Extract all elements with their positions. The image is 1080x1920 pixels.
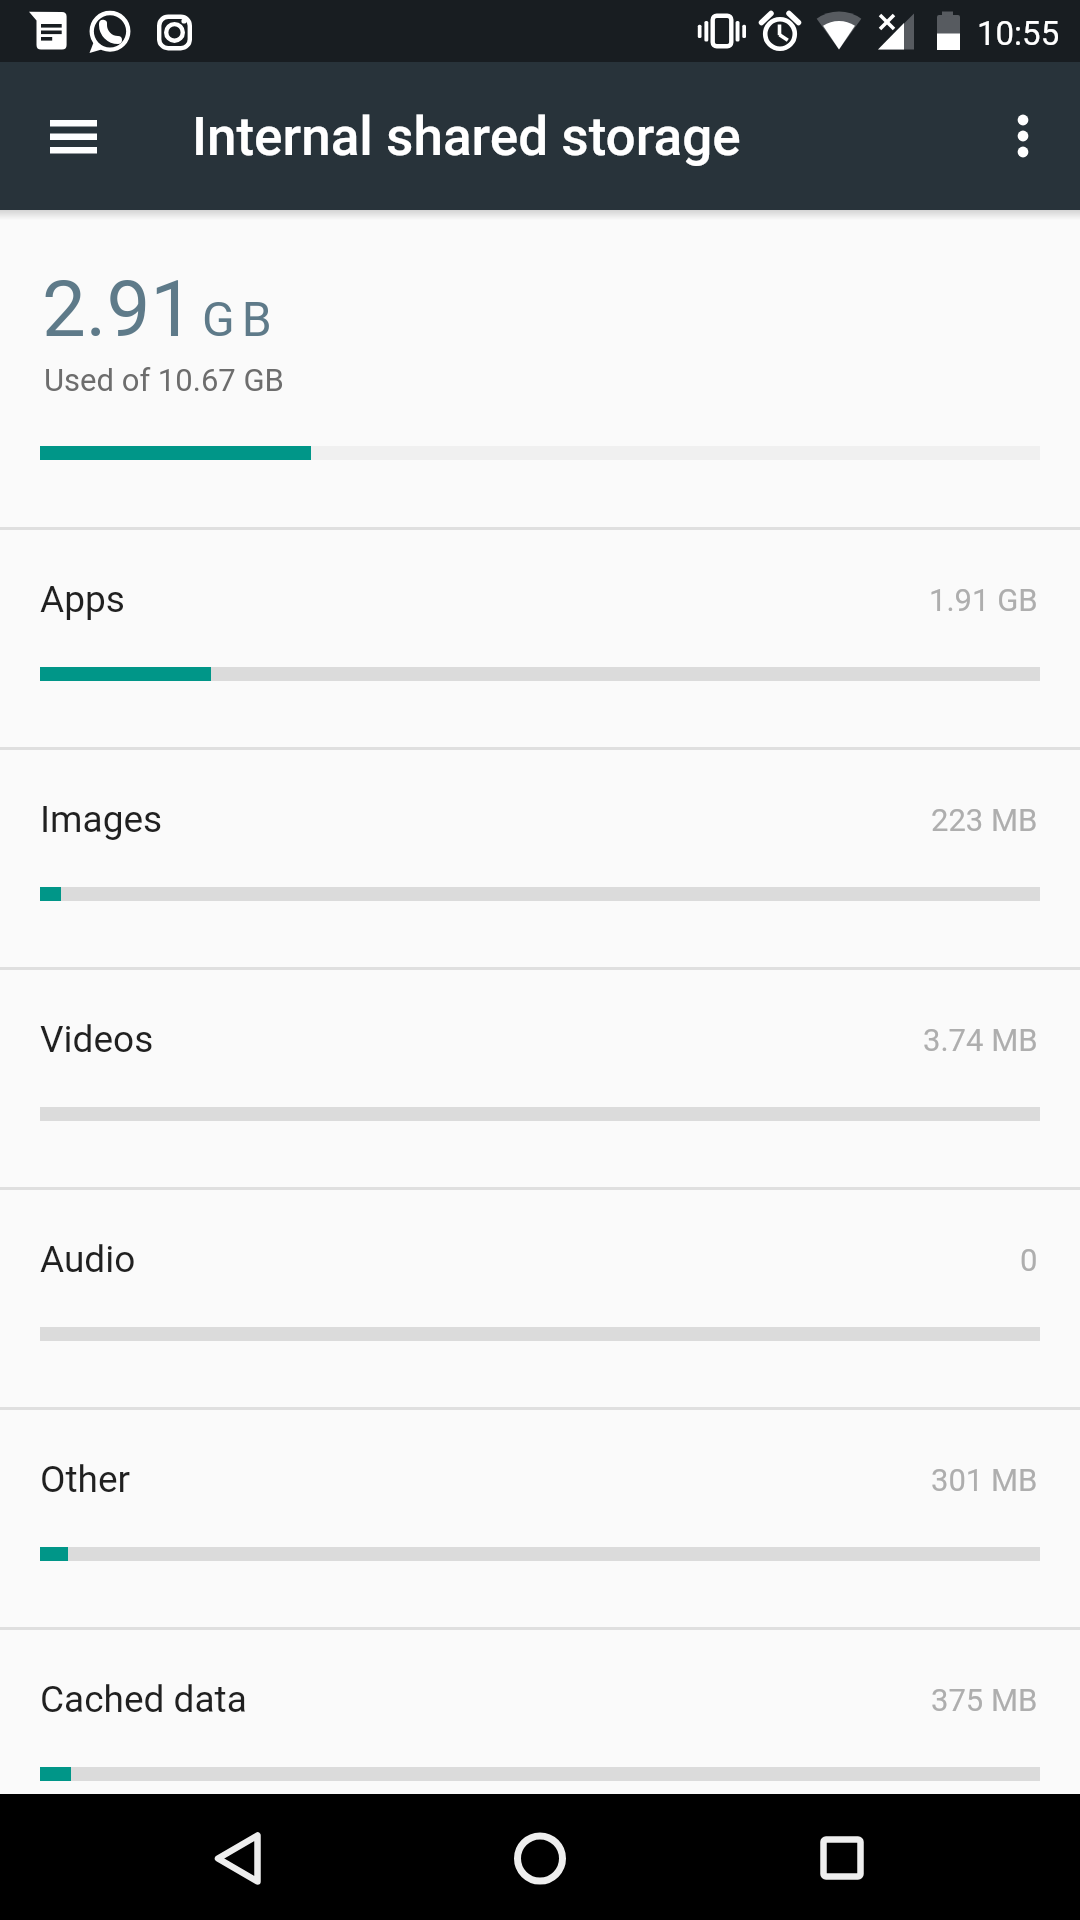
staticText: Images — [40, 798, 163, 841]
staticText: 223 MB — [931, 802, 1038, 838]
button[interactable]: Apps — [0, 527, 1080, 747]
button[interactable]: Other — [0, 1407, 1080, 1627]
staticText: 2.91 — [42, 264, 195, 355]
staticText: Cached data — [40, 1678, 247, 1721]
staticText: 301 MB — [931, 1462, 1038, 1498]
button[interactable] — [187, 1810, 287, 1910]
staticText: Apps — [40, 578, 125, 621]
staticText: Used of 10.67 GB — [44, 362, 284, 398]
staticText: Audio — [40, 1238, 136, 1281]
button[interactable]: Images — [0, 747, 1080, 967]
button[interactable]: Audio — [0, 1187, 1080, 1407]
button[interactable] — [25, 112, 123, 168]
staticText: Videos — [40, 1018, 154, 1061]
staticText: GB — [202, 291, 279, 347]
staticText: Other — [40, 1458, 131, 1501]
button[interactable]: Videos — [0, 967, 1080, 1187]
button[interactable] — [792, 1810, 892, 1910]
button[interactable] — [983, 96, 1063, 176]
staticText: 10:55 — [977, 14, 1060, 53]
staticText: 1.91 GB — [929, 582, 1038, 618]
button[interactable] — [490, 1810, 590, 1910]
staticText: 3.74 MB — [923, 1022, 1038, 1058]
staticText: 0 — [1020, 1242, 1038, 1278]
button[interactable]: Cached data — [0, 1627, 1080, 1847]
staticText: 375 MB — [931, 1682, 1038, 1718]
staticText: Internal shared storage — [192, 106, 741, 168]
